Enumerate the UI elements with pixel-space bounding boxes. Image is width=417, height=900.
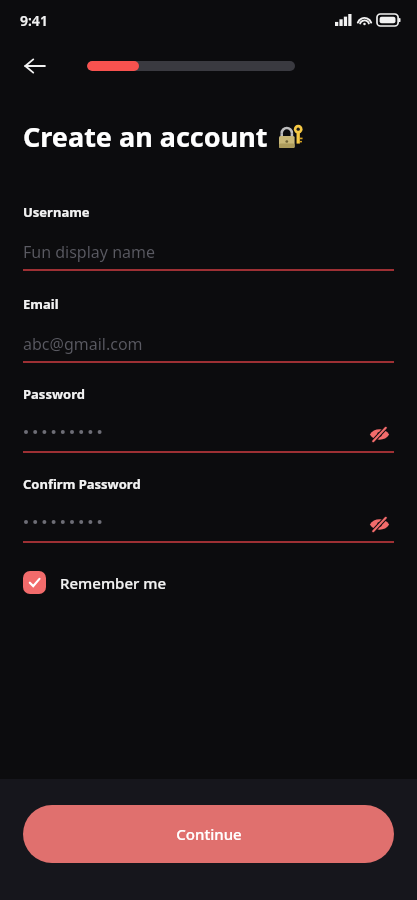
button[interactable]: Show password — [23, 509, 394, 539]
staticText: Continue — [176, 824, 242, 844]
button[interactable]: abc@gmail.com — [23, 329, 394, 359]
button[interactable]: Fun display name — [23, 237, 394, 267]
button[interactable]: Show password — [364, 419, 394, 449]
staticText: Remember me — [60, 573, 167, 593]
button[interactable]: Back — [18, 49, 52, 83]
staticText: Username — [23, 203, 90, 221]
staticText: Fun display name — [23, 241, 155, 263]
staticText: Email — [23, 295, 59, 313]
button[interactable]: Show password — [23, 419, 394, 449]
button[interactable]: Continue — [23, 805, 394, 863]
button[interactable]: Show password — [364, 509, 394, 539]
staticText: Confirm Password — [23, 475, 141, 493]
staticText: abc@gmail.com — [23, 333, 143, 355]
staticText: Password — [23, 385, 85, 403]
staticText: 9:41 — [20, 11, 48, 30]
button[interactable]: Remember me — [23, 571, 167, 594]
staticText: Create an account — [23, 118, 268, 155]
